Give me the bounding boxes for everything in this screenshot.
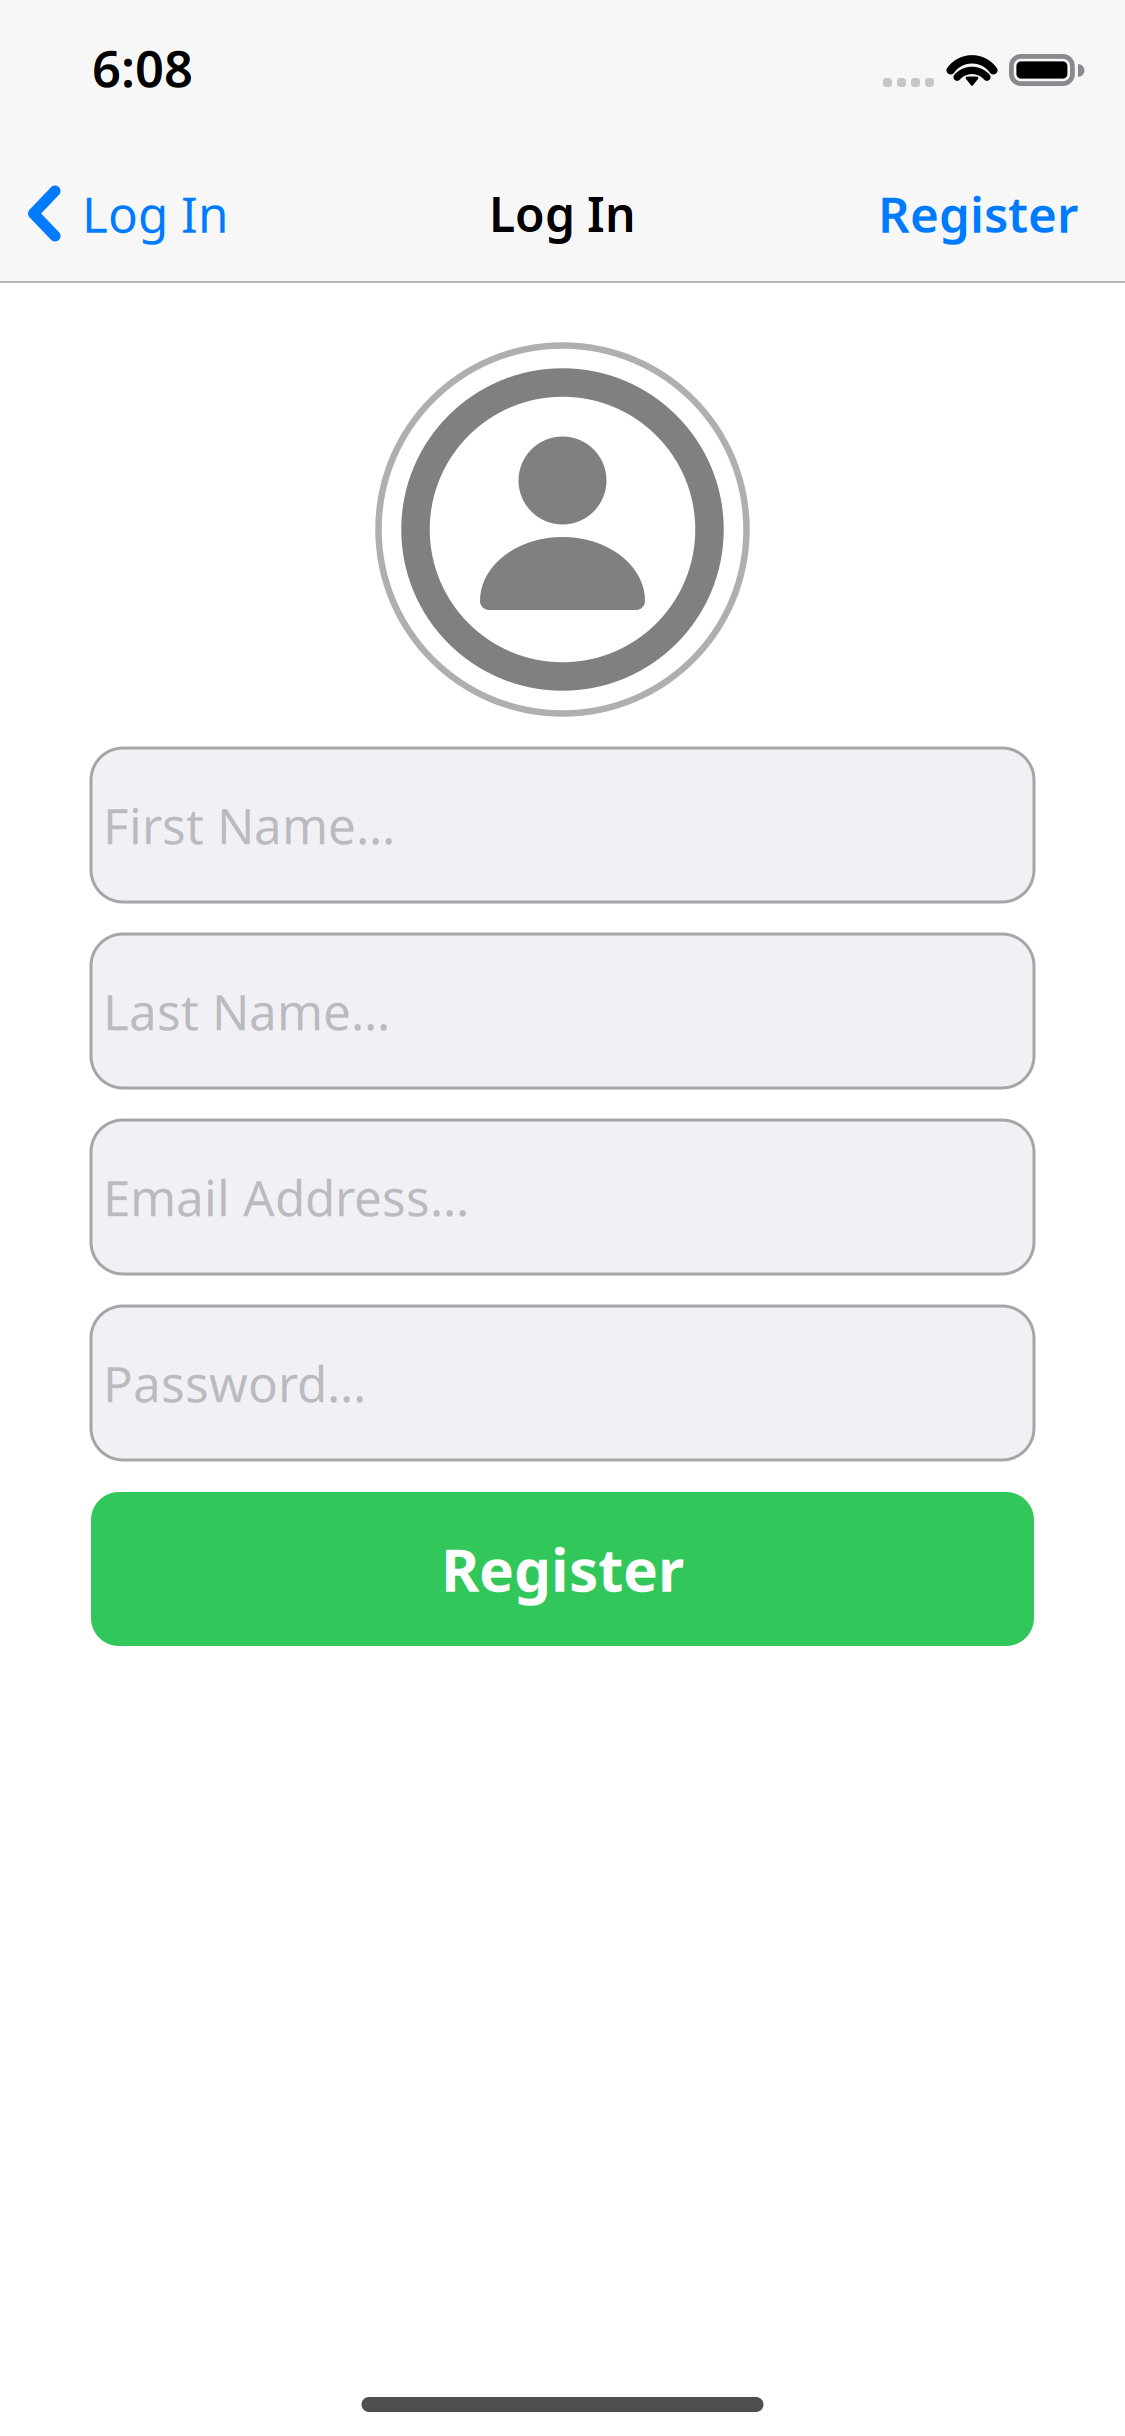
button[interactable]: Last Name... bbox=[91, 934, 1034, 1088]
staticText: First Name... bbox=[103, 792, 395, 858]
staticText: Last Name... bbox=[103, 978, 390, 1044]
button[interactable]: Password... bbox=[91, 1306, 1034, 1460]
staticText: Email Address... bbox=[103, 1164, 469, 1230]
staticText: Log In bbox=[489, 182, 636, 245]
button[interactable]: Email Address... bbox=[91, 1120, 1034, 1274]
button[interactable]: Log In bbox=[0, 133, 248, 281]
staticText: Log In bbox=[82, 181, 228, 246]
button[interactable]: Register bbox=[858, 133, 1125, 281]
staticText: Password... bbox=[103, 1350, 366, 1416]
button[interactable]: Register bbox=[91, 1492, 1034, 1646]
staticText: Register bbox=[878, 181, 1078, 246]
button[interactable]: First Name... bbox=[91, 748, 1034, 902]
staticText: 6:08 bbox=[92, 34, 193, 101]
staticText: Register bbox=[441, 1530, 684, 1608]
